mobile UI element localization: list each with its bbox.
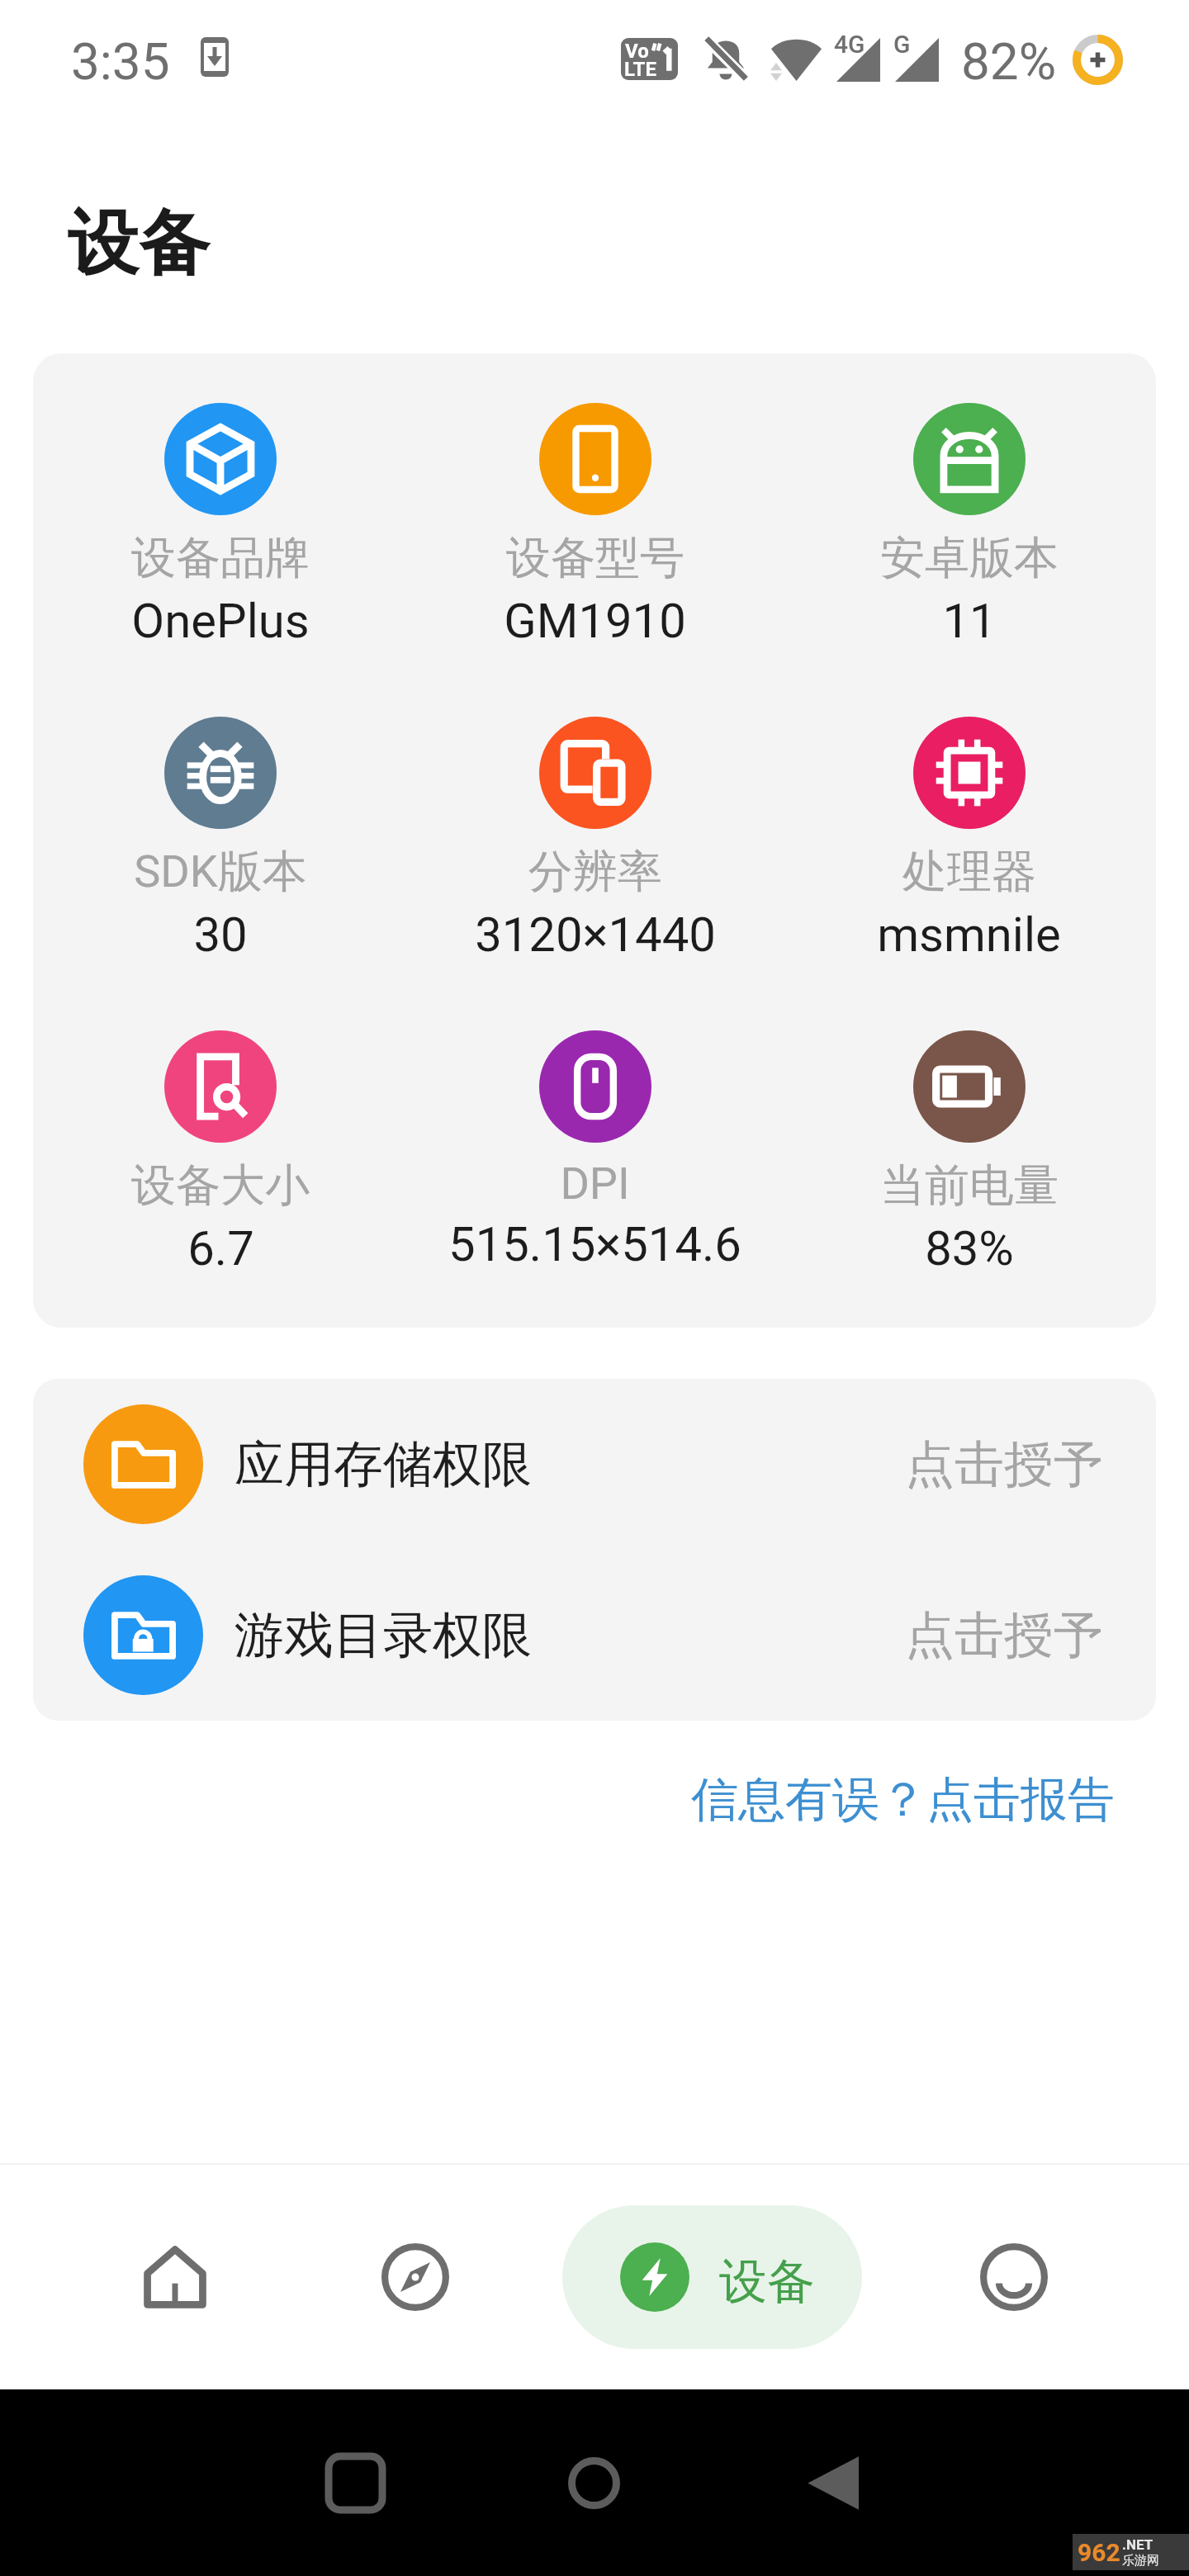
staticText: 设备: [68, 199, 210, 288]
staticText: .NET: [1122, 2536, 1153, 2553]
button[interactable]: Profile: [943, 2165, 1085, 2389]
staticText: 信息有误？点击报告: [691, 1770, 1115, 1830]
staticText: 3120×1440: [475, 907, 716, 963]
staticText: 当前电量: [880, 1158, 1059, 1214]
staticText: msmnile: [877, 907, 1061, 963]
staticText: OnePlus: [131, 593, 310, 649]
button[interactable]: Home: [519, 2389, 668, 2576]
button[interactable]: 应用存储权限: [33, 1379, 1156, 1550]
staticText: SDK版本: [134, 844, 307, 900]
staticText: 设备品牌: [131, 530, 310, 586]
button[interactable]: 处理器: [782, 667, 1156, 981]
button[interactable]: Recents: [281, 2389, 429, 2576]
staticText: 点击授予: [905, 1433, 1103, 1496]
staticText: 3:35: [71, 31, 170, 92]
button[interactable]: Back: [760, 2389, 908, 2576]
staticText: 82%: [961, 31, 1057, 92]
button[interactable]: 游戏目录权限: [33, 1550, 1156, 1721]
staticText: GM1910: [504, 593, 686, 649]
staticText: 6.7: [187, 1220, 254, 1276]
staticText: 设备大小: [131, 1158, 310, 1214]
button[interactable]: 设备品牌: [33, 353, 408, 667]
staticText: 设备型号: [506, 530, 685, 586]
staticText: 安卓版本: [880, 530, 1059, 586]
button[interactable]: 设备: [562, 2205, 862, 2349]
staticText: 设备: [719, 2252, 815, 2312]
staticText: LTE: [624, 58, 656, 81]
button[interactable]: 设备型号: [408, 353, 782, 667]
button[interactable]: 设备大小: [33, 981, 408, 1295]
button[interactable]: SDK版本: [33, 667, 408, 981]
button[interactable]: Home: [104, 2165, 246, 2389]
staticText: 11: [942, 593, 997, 649]
staticText: DPI: [560, 1158, 630, 1210]
staticText: G: [893, 30, 911, 59]
staticText: 处理器: [902, 844, 1036, 900]
button[interactable]: 当前电量: [782, 981, 1156, 1295]
staticText: 游戏目录权限: [234, 1604, 532, 1667]
staticText: 4G: [834, 30, 865, 59]
staticText: 962: [1078, 2538, 1120, 2567]
staticText: 515.15×514.6: [448, 1216, 741, 1272]
staticText: 83%: [925, 1220, 1014, 1276]
staticText: 30: [193, 907, 248, 963]
button[interactable]: DPI: [408, 981, 782, 1295]
staticText: 分辨率: [528, 844, 662, 900]
staticText: 乐游网: [1122, 2553, 1159, 2569]
button[interactable]: 信息有误？点击报告: [691, 1759, 1115, 1841]
staticText: 应用存储权限: [234, 1433, 532, 1496]
button[interactable]: 分辨率: [408, 667, 782, 981]
button[interactable]: 安卓版本: [782, 353, 1156, 667]
button[interactable]: Explore: [344, 2165, 486, 2389]
staticText: 点击授予: [905, 1604, 1103, 1667]
staticText: Vo: [625, 40, 649, 63]
